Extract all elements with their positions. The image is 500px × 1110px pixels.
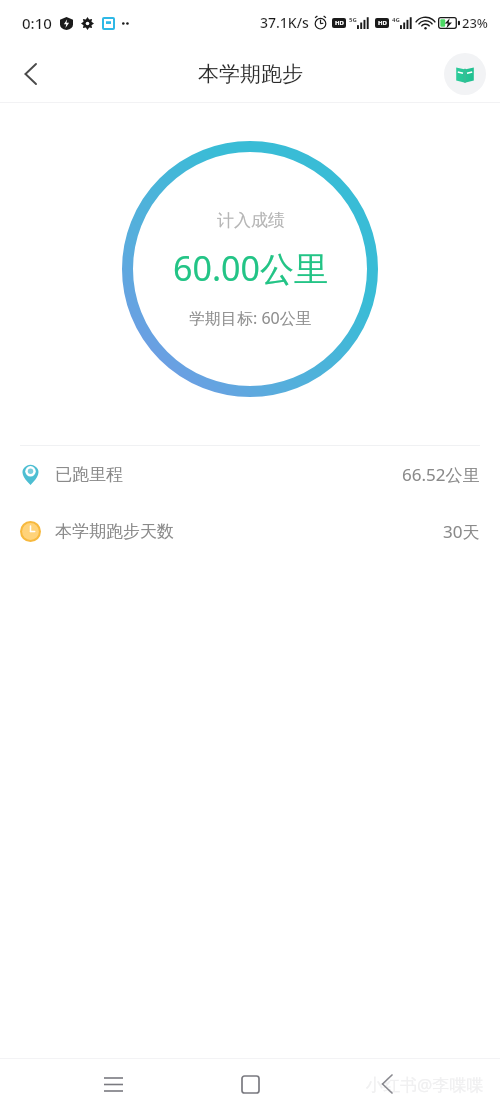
staticText: HD	[378, 19, 387, 27]
staticText: 5G	[349, 16, 357, 24]
staticText: 本学期跑步	[198, 61, 303, 87]
staticText: 计入成绩	[217, 210, 285, 231]
button[interactable]: 主屏幕	[226, 1060, 274, 1108]
staticText: 30天	[443, 520, 480, 543]
staticText: 0:10	[22, 13, 52, 33]
staticText: 学期目标: 60公里	[189, 307, 312, 329]
staticText: 66.52公里	[402, 463, 480, 486]
button[interactable]: 规则说明	[444, 53, 486, 95]
button[interactable]: 返回	[6, 50, 54, 98]
staticText: 23%	[462, 14, 488, 32]
button[interactable]: 最近任务	[89, 1060, 137, 1108]
staticText: 37.1K/s	[260, 13, 309, 32]
staticText: HD	[335, 19, 344, 27]
button[interactable]: 本学期跑步天数	[0, 503, 500, 560]
staticText: 本学期跑步天数	[55, 521, 174, 542]
staticText: 已跑里程	[55, 464, 123, 485]
button[interactable]: 已跑里程	[0, 446, 500, 503]
staticText: 小红书@李喋喋	[366, 1073, 484, 1096]
staticText: 4G	[392, 16, 400, 24]
staticText: 60.00公里	[173, 245, 328, 291]
button[interactable]: 返回	[363, 1060, 411, 1108]
